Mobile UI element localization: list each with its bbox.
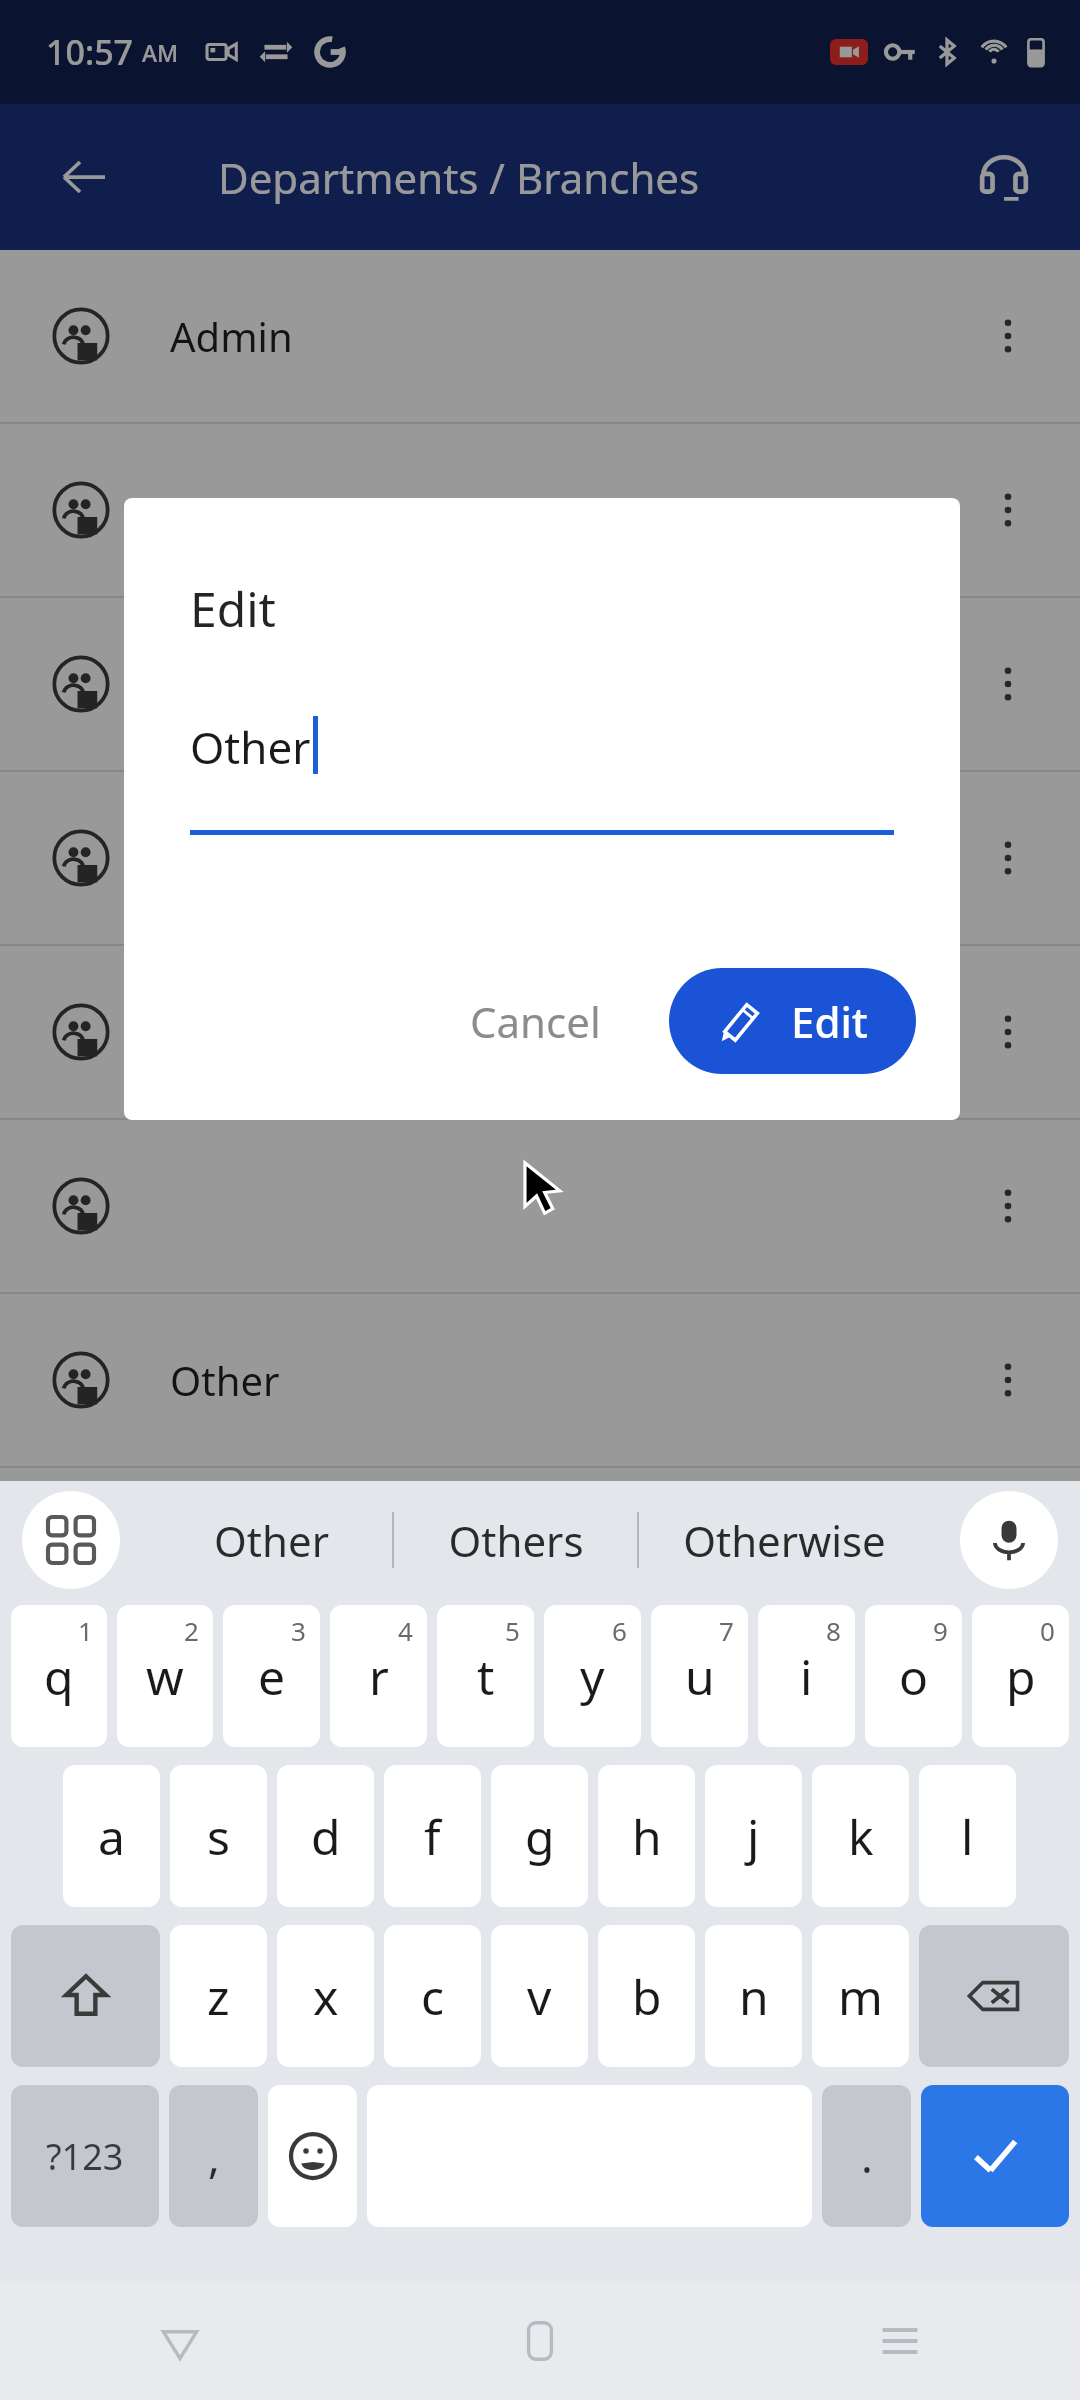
- button[interactable]: Admin: [0, 250, 1080, 422]
- staticText: q: [44, 1644, 74, 1709]
- button[interactable]: More options: [966, 1338, 1050, 1422]
- staticText: h: [632, 1804, 662, 1869]
- button[interactable]: Backspace: [919, 1925, 1069, 2067]
- button[interactable]: y: [544, 1605, 641, 1747]
- button[interactable]: Back: [42, 135, 126, 219]
- staticText: w: [146, 1644, 184, 1709]
- staticText: 4: [398, 1613, 413, 1648]
- button[interactable]: More options: [966, 1512, 1050, 1596]
- staticText: 0: [1040, 1613, 1055, 1648]
- button[interactable]: g: [491, 1765, 588, 1907]
- button[interactable]: Support: [962, 135, 1046, 219]
- staticText: z: [207, 1964, 230, 2029]
- button[interactable]: Edit: [669, 968, 916, 1074]
- staticText: 2: [184, 1613, 199, 1648]
- staticText: n: [739, 1964, 769, 2029]
- button[interactable]: m: [812, 1925, 909, 2067]
- button[interactable]: Cancel: [444, 975, 627, 1068]
- button[interactable]: Comma: [169, 2085, 258, 2227]
- button[interactable]: z: [170, 1925, 267, 2067]
- button[interactable]: Design team: [0, 1468, 1080, 1640]
- button[interactable]: v: [491, 1925, 588, 2067]
- button[interactable]: k: [812, 1765, 909, 1907]
- staticText: t: [477, 1644, 495, 1709]
- staticText: Cancel: [470, 993, 601, 1050]
- staticText: 10:57: [46, 29, 134, 75]
- button[interactable]: a: [63, 1765, 160, 1907]
- button[interactable]: Other: [190, 717, 894, 835]
- button[interactable]: More options: [0, 598, 1080, 770]
- button[interactable]: More options: [966, 468, 1050, 552]
- staticText: Otherwise: [683, 1512, 886, 1569]
- staticText: 9: [933, 1613, 948, 1648]
- button[interactable]: e: [223, 1605, 320, 1747]
- staticText: c: [421, 1964, 445, 2029]
- button[interactable]: Other: [0, 1294, 1080, 1466]
- staticText: o: [899, 1644, 929, 1709]
- button[interactable]: t: [437, 1605, 534, 1747]
- button[interactable]: More options: [0, 946, 1080, 1118]
- staticText: 8: [826, 1613, 841, 1648]
- staticText: f: [424, 1804, 441, 1869]
- button[interactable]: More options: [0, 1120, 1080, 1292]
- button[interactable]: More options: [0, 424, 1080, 596]
- button[interactable]: x: [277, 1925, 374, 2067]
- button[interactable]: s: [170, 1765, 267, 1907]
- button[interactable]: More options: [966, 294, 1050, 378]
- staticText: p: [1006, 1644, 1036, 1709]
- button[interactable]: More options: [0, 772, 1080, 944]
- button[interactable]: Otherwise: [639, 1481, 930, 1599]
- button[interactable]: b: [598, 1925, 695, 2067]
- button[interactable]: Shift: [11, 1925, 160, 2067]
- button[interactable]: q: [11, 1605, 107, 1747]
- staticText: Edit: [791, 993, 868, 1050]
- staticText: j: [747, 1804, 760, 1869]
- button[interactable]: More options: [966, 642, 1050, 726]
- button[interactable]: More options: [966, 990, 1050, 1074]
- staticText: Departments / Branches: [218, 149, 700, 206]
- button[interactable]: f: [384, 1765, 481, 1907]
- staticText: u: [685, 1644, 715, 1709]
- button[interactable]: i: [758, 1605, 855, 1747]
- button[interactable]: More options: [966, 1164, 1050, 1248]
- button[interactable]: More options: [966, 816, 1050, 900]
- staticText: Other: [214, 1512, 329, 1569]
- button[interactable]: r: [330, 1605, 427, 1747]
- button[interactable]: Keyboard options: [22, 1491, 120, 1589]
- button[interactable]: o: [865, 1605, 962, 1747]
- button[interactable]: Symbols: [11, 2085, 159, 2227]
- button[interactable]: w: [117, 1605, 213, 1747]
- button[interactable]: l: [919, 1765, 1016, 1907]
- button[interactable]: Recent apps: [720, 2281, 1080, 2400]
- button[interactable]: Voice input: [960, 1491, 1058, 1589]
- button[interactable]: n: [705, 1925, 802, 2067]
- staticText: 7: [719, 1613, 734, 1648]
- staticText: l: [961, 1804, 974, 1869]
- staticText: d: [311, 1804, 341, 1869]
- staticText: 3: [291, 1613, 306, 1648]
- button[interactable]: d: [277, 1765, 374, 1907]
- staticText: ?123: [46, 2132, 124, 2181]
- button[interactable]: c: [384, 1925, 481, 2067]
- button[interactable]: h: [598, 1765, 695, 1907]
- button[interactable]: Home: [360, 2281, 720, 2400]
- staticText: m: [838, 1964, 883, 2029]
- staticText: s: [207, 1804, 230, 1869]
- button[interactable]: Others: [394, 1481, 637, 1599]
- button[interactable]: Period: [822, 2085, 911, 2227]
- button[interactable]: Back: [0, 2281, 360, 2400]
- staticText: v: [527, 1964, 552, 2029]
- staticText: ,: [208, 2126, 220, 2186]
- staticText: 5: [505, 1613, 520, 1648]
- staticText: 6: [612, 1613, 627, 1648]
- button[interactable]: u: [651, 1605, 748, 1747]
- staticText: k: [848, 1804, 874, 1869]
- staticText: a: [98, 1804, 125, 1869]
- button[interactable]: Emoji: [268, 2085, 357, 2227]
- button[interactable]: j: [705, 1765, 802, 1907]
- button[interactable]: Other: [150, 1481, 392, 1599]
- button[interactable]: p: [972, 1605, 1069, 1747]
- button[interactable]: Enter: [921, 2085, 1069, 2227]
- staticText: AM: [142, 37, 179, 68]
